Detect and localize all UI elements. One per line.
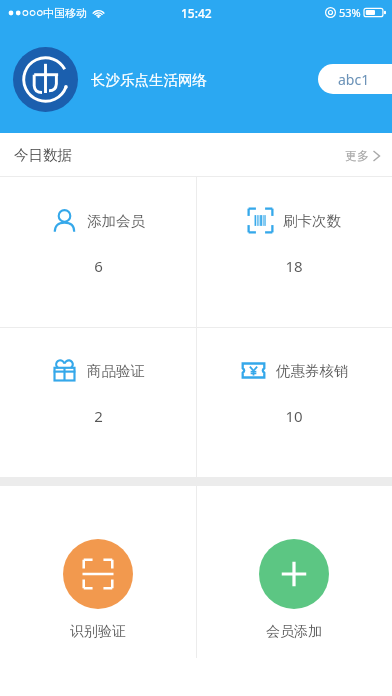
staticText: 18 [285,256,303,276]
other: 识别验证 [81,557,115,591]
button[interactable]: abc1 [318,64,392,94]
button[interactable]: 长沙乐点生活网络 [13,47,207,112]
other: 会员添加 [277,557,311,591]
staticText: 15:42 [181,5,212,21]
staticText: 53% [339,5,361,20]
staticText: 2 [94,406,103,426]
staticText: 优惠券核销 [276,362,349,380]
staticText: 添加会员 [87,212,145,230]
staticText: 刷卡次数 [283,212,341,230]
staticText: abc1 [338,70,370,89]
staticText: 中国移动 [43,6,87,20]
staticText: 商品验证 [87,362,145,380]
staticText: 会员添加 [266,623,322,641]
staticText: 识别验证 [70,623,126,641]
staticText: 10 [285,406,303,426]
button[interactable]: 更多 [345,148,380,163]
button[interactable]: 商品验证 [0,327,196,477]
button[interactable]: 添加会员 [0,177,196,327]
staticText: 今日数据 [14,146,72,164]
staticText: 长沙乐点生活网络 [91,71,207,89]
button[interactable]: 优惠券核销 [196,327,392,477]
button[interactable]: 识别验证 [0,486,196,696]
button[interactable]: 会员添加 [196,486,392,696]
staticText: 6 [94,256,103,276]
staticText: 更多 [345,148,369,163]
button[interactable]: 刷卡次数 [196,177,392,327]
